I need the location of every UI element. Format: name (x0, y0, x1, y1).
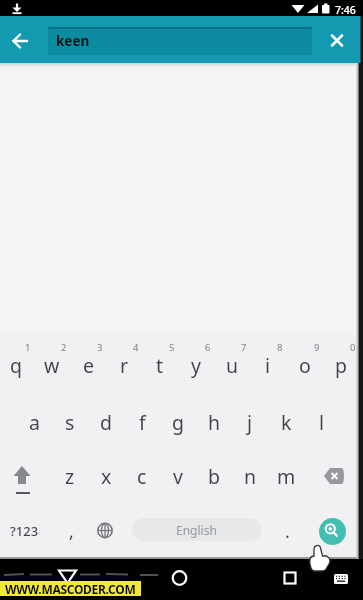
staticText: 1 (25, 341, 31, 354)
staticText: p (335, 352, 347, 379)
button[interactable]: r (106, 338, 142, 393)
button[interactable]: , (53, 504, 89, 558)
staticText: f (139, 409, 146, 436)
staticText: 7 (241, 341, 247, 354)
staticText: q (10, 352, 22, 379)
button[interactable] (88, 504, 122, 558)
button[interactable]: c (124, 449, 160, 504)
button[interactable]: w (34, 338, 70, 393)
button[interactable]: e (70, 338, 106, 393)
button[interactable]: v (160, 449, 196, 504)
button[interactable]: n (232, 449, 268, 504)
staticText: w (44, 352, 60, 379)
button[interactable] (43, 562, 91, 600)
button[interactable]: p (323, 338, 359, 393)
staticText: d (100, 409, 112, 436)
staticText: l (319, 409, 325, 436)
staticText: u (226, 352, 239, 379)
button[interactable]: x (88, 449, 124, 504)
button[interactable]: i (250, 338, 286, 393)
staticText: 4 (133, 341, 139, 354)
staticText: s (65, 409, 75, 436)
staticText: 6 (205, 341, 211, 354)
staticText: e (83, 352, 94, 379)
staticText: r (120, 352, 129, 379)
button[interactable]: b (196, 449, 232, 504)
button[interactable] (157, 562, 205, 600)
staticText: j (247, 409, 253, 436)
button[interactable] (325, 562, 358, 600)
staticText: a (29, 409, 40, 436)
button[interactable]: English (132, 518, 261, 541)
button[interactable]: j (232, 395, 268, 450)
staticText: o (299, 352, 311, 379)
button[interactable]: o (287, 338, 323, 393)
staticText: t (156, 352, 164, 379)
staticText: z (65, 463, 75, 490)
staticText: c (137, 463, 147, 490)
button[interactable]: z (52, 449, 88, 504)
staticText: 7:46 (335, 3, 356, 17)
staticText: English (176, 522, 217, 538)
staticText: 0 (350, 341, 356, 354)
button[interactable] (0, 16, 44, 63)
button[interactable] (318, 16, 363, 63)
button[interactable]: a (16, 395, 52, 450)
button[interactable]: s (52, 395, 88, 450)
button[interactable]: y (178, 338, 214, 393)
staticText: g (172, 409, 184, 436)
button[interactable]: d (88, 395, 124, 450)
staticText: n (244, 463, 257, 490)
button[interactable]: k (268, 395, 304, 450)
staticText: 3 (97, 341, 103, 354)
button[interactable]: m (268, 449, 304, 504)
staticText: m (277, 463, 296, 490)
button[interactable] (315, 449, 363, 503)
button[interactable] (319, 518, 346, 545)
staticText: v (173, 463, 183, 490)
button[interactable]: keen (48, 27, 312, 55)
button[interactable]: l (304, 395, 340, 450)
button[interactable]: h (196, 395, 232, 450)
staticText: h (208, 409, 221, 436)
staticText: k (281, 409, 292, 436)
staticText: WWW.MASCODER.COM (5, 581, 136, 596)
button[interactable] (266, 562, 314, 600)
button[interactable]: f (124, 395, 160, 450)
staticText: , (69, 519, 74, 544)
staticText: keen (56, 32, 90, 50)
staticText: x (101, 463, 112, 490)
staticText: 5 (169, 341, 175, 354)
button[interactable]: t (142, 338, 178, 393)
button[interactable]: g (160, 395, 196, 450)
staticText: . (285, 519, 290, 544)
staticText: 9 (314, 341, 320, 354)
button[interactable] (0, 449, 48, 503)
staticText: 2 (61, 341, 67, 354)
button[interactable]: q (0, 338, 34, 393)
staticText: i (265, 352, 271, 379)
button[interactable]: ?123 (2, 504, 46, 558)
staticText: 8 (277, 341, 283, 354)
staticText: ?123 (10, 522, 39, 540)
staticText: b (208, 463, 220, 490)
button[interactable]: . (269, 504, 305, 558)
button[interactable]: u (214, 338, 250, 393)
staticText: y (191, 352, 201, 379)
